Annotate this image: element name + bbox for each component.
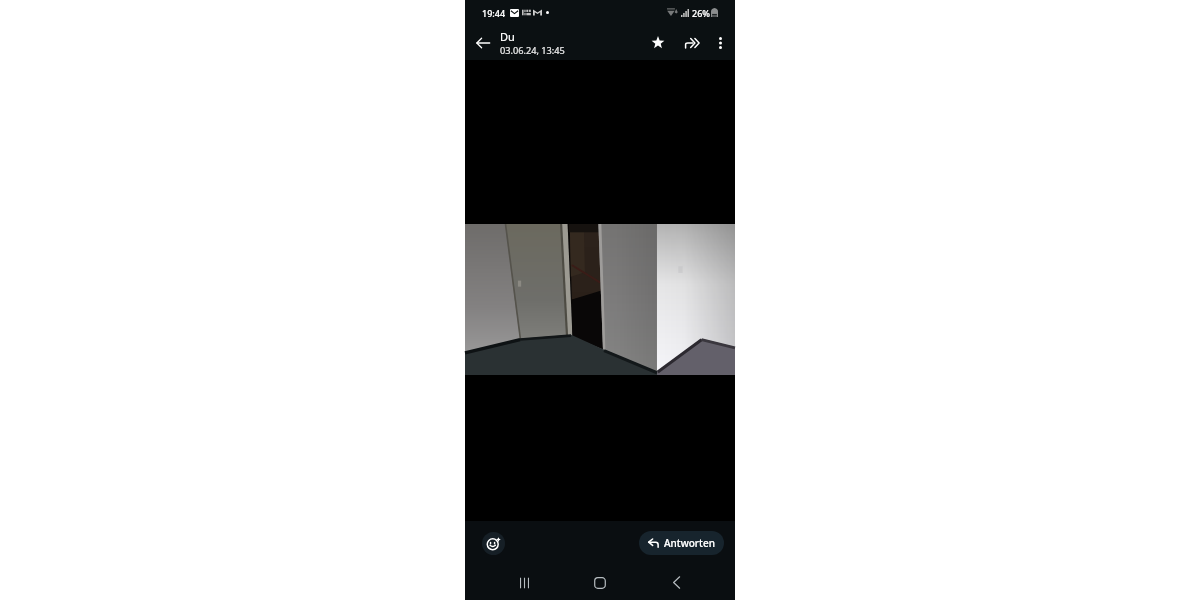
button[interactable]: Add reaction xyxy=(482,532,505,555)
button[interactable]: Home xyxy=(562,565,638,600)
button[interactable]: Favorite xyxy=(643,26,673,59)
button[interactable]: More options xyxy=(707,26,733,59)
button[interactable]: Back xyxy=(465,25,500,60)
staticText: 26% xyxy=(692,7,710,19)
staticText: 03.06.24, 13:45 xyxy=(500,44,565,57)
staticText: Du xyxy=(500,29,515,44)
button[interactable]: Forward xyxy=(677,26,707,59)
button[interactable]: Back xyxy=(638,565,714,600)
button[interactable]: Antworten xyxy=(639,531,724,555)
staticText: Antworten xyxy=(664,536,715,550)
staticText: 19:44 xyxy=(482,7,506,19)
button[interactable]: Recents xyxy=(486,565,562,600)
